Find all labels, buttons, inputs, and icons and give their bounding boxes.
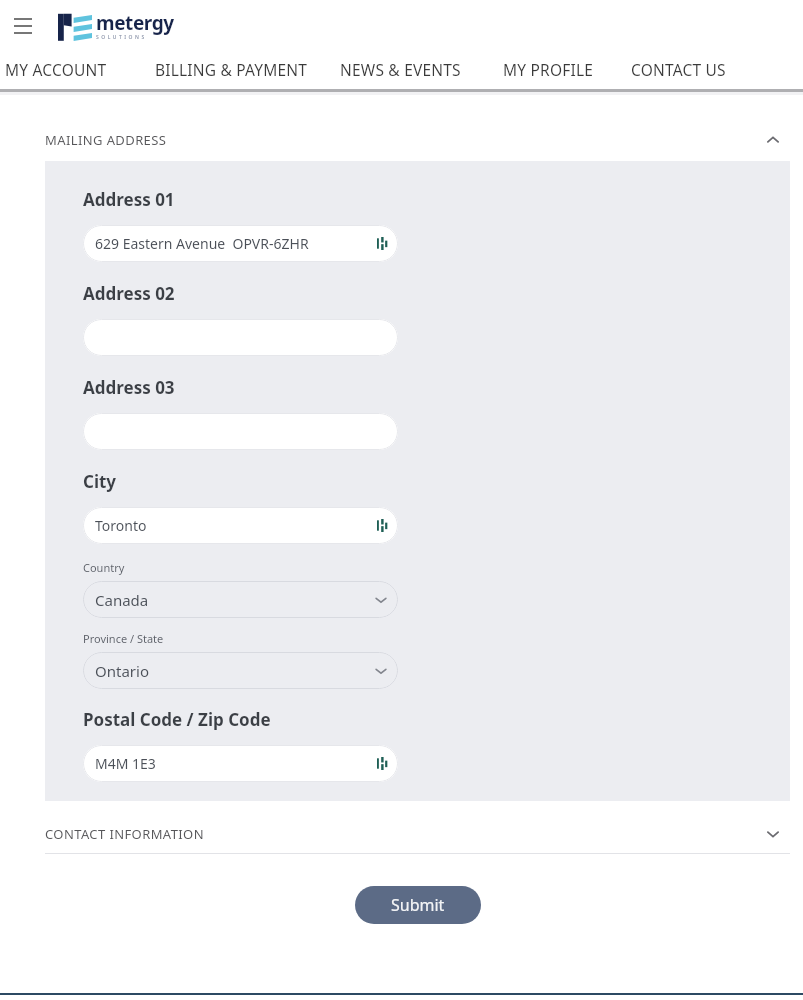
staticText: Address 02 <box>83 282 175 305</box>
button[interactable]: M4M 1E3 <box>83 745 398 782</box>
staticText: BILLING & PAYMENT <box>155 59 308 80</box>
staticText: Country <box>83 560 125 575</box>
staticText: 629 Eastern Avenue OPVR-6ZHR <box>95 234 309 253</box>
button[interactable]: MY PROFILE <box>503 50 594 89</box>
button[interactable] <box>83 319 398 356</box>
staticText: MAILING ADDRESS <box>45 131 167 149</box>
staticText: Address 01 <box>83 188 175 211</box>
staticText: MY ACCOUNT <box>5 59 107 80</box>
staticText: Canada <box>95 590 149 610</box>
button[interactable]: Ontario <box>83 652 398 689</box>
staticText: CONTACT INFORMATION <box>45 825 204 843</box>
button[interactable]: Menu <box>8 12 38 40</box>
staticText: MY PROFILE <box>503 59 594 80</box>
staticText: CONTACT US <box>631 59 726 80</box>
button[interactable]: Canada <box>83 581 398 618</box>
button[interactable]: 629 Eastern Avenue OPVR-6ZHR <box>83 225 398 262</box>
staticText: NEWS & EVENTS <box>340 59 461 80</box>
staticText: City <box>83 470 117 493</box>
staticText: metergy <box>96 10 174 36</box>
button[interactable] <box>83 413 398 450</box>
staticText: S O L U T I O N S <box>96 34 145 41</box>
staticText: Postal Code / Zip Code <box>83 708 271 731</box>
staticText: Toronto <box>95 516 147 535</box>
staticText: M4M 1E3 <box>95 754 156 773</box>
button[interactable]: CONTACT US <box>631 50 726 89</box>
button[interactable]: MY ACCOUNT <box>5 50 107 89</box>
staticText: Ontario <box>95 661 149 681</box>
button[interactable]: Metergy Solutions home <box>58 10 174 43</box>
button[interactable]: MAILING ADDRESS <box>0 121 803 159</box>
button[interactable]: Submit <box>355 886 481 924</box>
button[interactable]: BILLING & PAYMENT <box>155 50 308 89</box>
button[interactable]: NEWS & EVENTS <box>340 50 461 89</box>
staticText: Province / State <box>83 631 164 646</box>
staticText: Submit <box>391 894 445 916</box>
button[interactable]: Toronto <box>83 507 398 544</box>
button[interactable]: CONTACT INFORMATION <box>0 815 803 853</box>
staticText: Address 03 <box>83 376 175 399</box>
